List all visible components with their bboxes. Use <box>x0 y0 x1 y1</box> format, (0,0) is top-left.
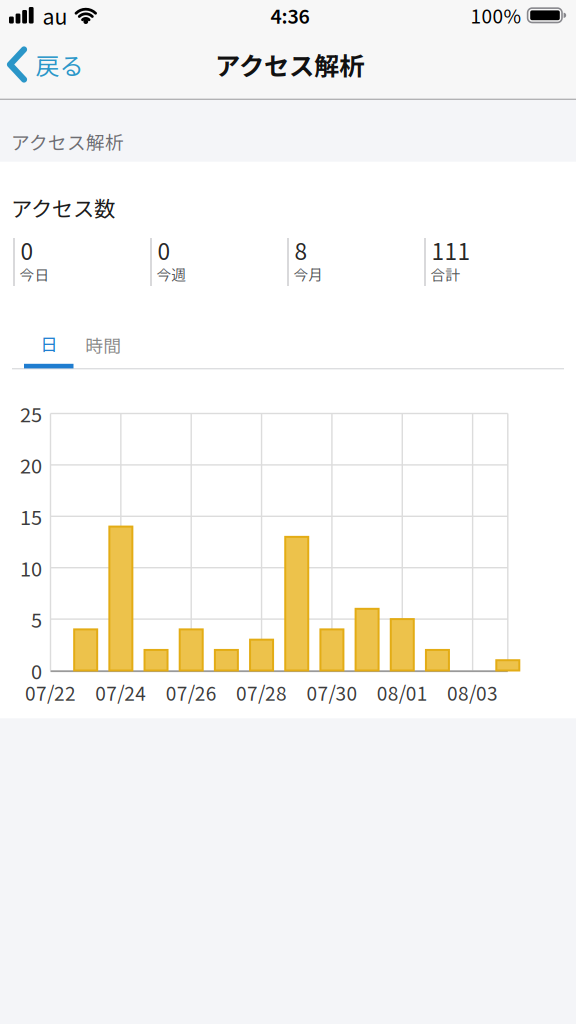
staticText: アクセス解析 <box>11 128 124 155</box>
staticText: 08/01 <box>377 679 428 706</box>
staticText: 0 <box>31 656 42 685</box>
staticText: 4:36 <box>270 1 309 29</box>
staticText: 111 <box>431 234 470 267</box>
staticText: 今週 <box>156 264 186 285</box>
staticText: 今月 <box>293 264 323 285</box>
staticText: 日 <box>40 331 57 356</box>
staticText: 10 <box>20 553 42 582</box>
staticText: 07/22 <box>25 679 76 706</box>
button[interactable]: 日 <box>24 324 73 368</box>
staticText: 5 <box>31 605 42 634</box>
staticText: 時間 <box>85 332 121 358</box>
staticText: 07/28 <box>236 679 287 706</box>
staticText: 07/24 <box>95 679 146 706</box>
staticText: au <box>42 0 67 31</box>
staticText: 0 <box>20 234 33 267</box>
staticText: 100% <box>470 1 521 29</box>
staticText: アクセス解析 <box>215 46 364 83</box>
staticText: 合計 <box>430 264 460 285</box>
staticText: 8 <box>294 234 307 267</box>
staticText: 0 <box>157 234 170 267</box>
staticText: 戻る <box>35 47 83 82</box>
staticText: 25 <box>20 399 42 428</box>
staticText: 07/30 <box>306 679 357 706</box>
staticText: 07/26 <box>166 679 217 706</box>
staticText: アクセス数 <box>11 192 115 223</box>
staticText: 20 <box>20 450 42 479</box>
staticText: 今日 <box>19 264 49 285</box>
button[interactable]: 時間 <box>75 323 131 367</box>
button[interactable]: 戻る <box>0 42 95 86</box>
staticText: 08/03 <box>447 679 498 706</box>
staticText: 15 <box>20 502 42 531</box>
